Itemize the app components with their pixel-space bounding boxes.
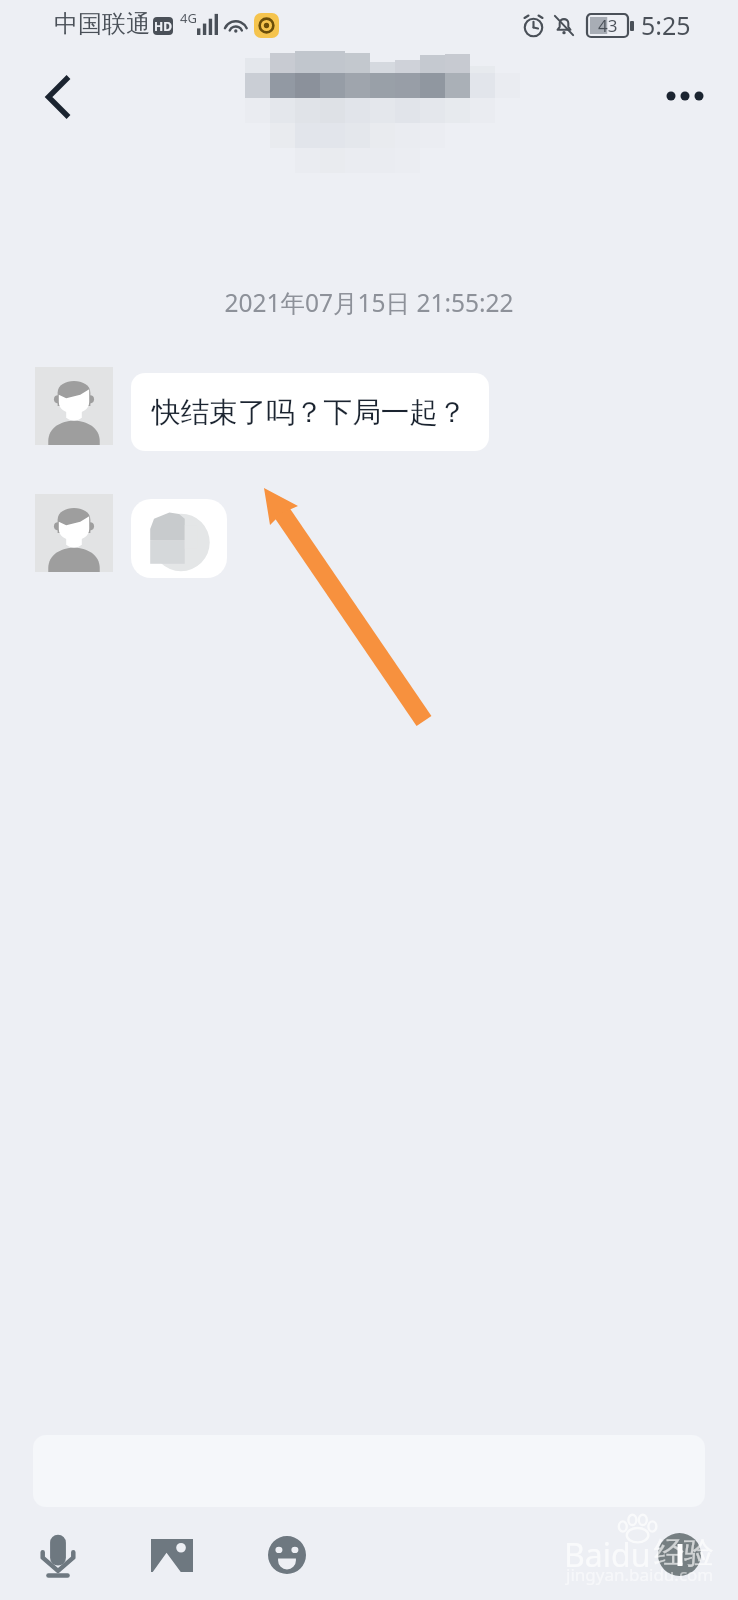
button[interactable]: Add	[658, 1533, 701, 1576]
button[interactable]: Emoji	[256, 1524, 318, 1586]
staticText: Baidu	[564, 1533, 651, 1577]
button[interactable]: 快结束了吗？下局一起？	[131, 373, 489, 451]
staticText: jingyan.baidu.com	[566, 1563, 714, 1586]
staticText: 43	[598, 14, 618, 37]
button[interactable]: Photos	[141, 1524, 203, 1586]
staticText: 4G	[180, 9, 197, 27]
staticText: 中国联通	[54, 9, 150, 39]
staticText: HD	[154, 18, 172, 34]
staticText: 快结束了吗？下局一起？	[152, 394, 467, 430]
staticText: 2021年07月15日 21:55:22	[224, 286, 514, 319]
staticText: 经验	[654, 1534, 714, 1572]
staticText: 5:25	[641, 8, 691, 42]
button[interactable]: Voice message	[27, 1524, 89, 1586]
button[interactable]: Back	[26, 64, 88, 126]
button[interactable]: More options	[655, 65, 715, 125]
button[interactable]	[131, 499, 227, 578]
